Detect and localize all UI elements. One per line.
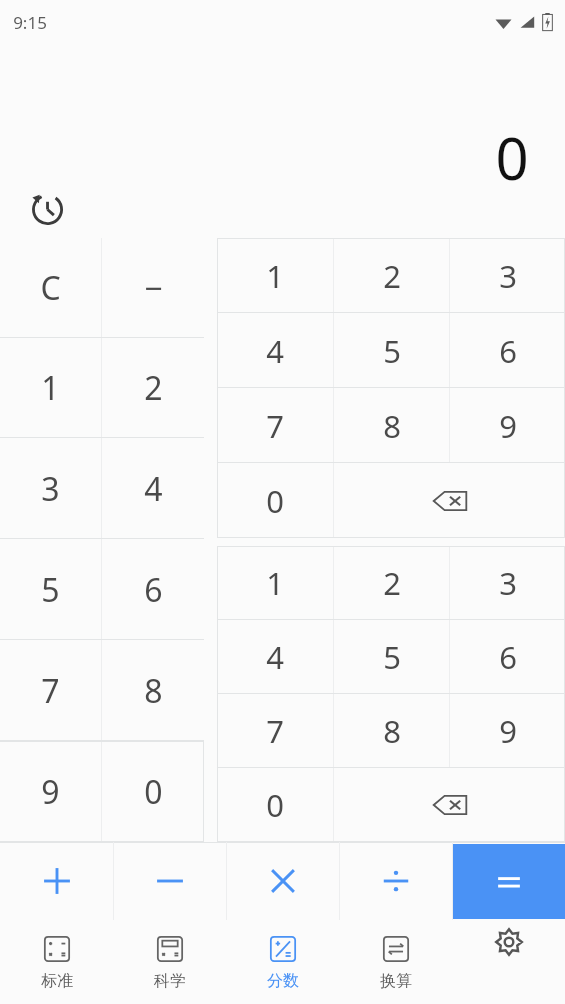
staticText: 7 [266, 710, 284, 752]
staticText: 9:15 [13, 11, 47, 34]
button[interactable]: 9 [450, 388, 565, 463]
button[interactable]: 8 [334, 388, 449, 463]
staticText: 分数 [267, 971, 299, 991]
button[interactable]: 3 [450, 546, 565, 620]
staticText: 1 [41, 366, 60, 410]
staticText: 6 [144, 568, 163, 612]
button[interactable]: 7 [217, 694, 333, 768]
staticText: 8 [383, 710, 401, 752]
staticText: 0 [144, 770, 163, 814]
button[interactable]: History [27, 189, 65, 227]
button[interactable]: Minus [114, 842, 226, 920]
button[interactable]: 7 [217, 388, 333, 463]
button[interactable]: Multiply [227, 842, 339, 920]
staticText: C [40, 266, 61, 310]
button[interactable]: 1 [0, 338, 101, 438]
button[interactable]: 8 [334, 694, 449, 768]
staticText: 5 [383, 636, 401, 678]
staticText: 3 [499, 255, 517, 297]
staticText: 8 [144, 669, 163, 713]
button[interactable]: 2 [102, 338, 204, 438]
button[interactable]: 换算 [339, 920, 452, 1004]
button[interactable]: 5 [334, 620, 449, 694]
staticText: 6 [499, 636, 517, 678]
button[interactable]: 0 [102, 741, 204, 842]
button[interactable]: 5 [334, 313, 449, 388]
button[interactable]: 分数 [226, 920, 339, 1004]
staticText: 0 [266, 480, 284, 522]
button[interactable]: 0 [217, 463, 333, 538]
button[interactable]: 9 [450, 694, 565, 768]
staticText: 4 [266, 636, 284, 678]
button[interactable]: Plus [0, 842, 113, 920]
staticText: 3 [41, 467, 60, 511]
button[interactable]: 6 [450, 620, 565, 694]
button[interactable]: 4 [217, 620, 333, 694]
staticText: 1 [266, 255, 284, 297]
button[interactable]: 3 [0, 438, 101, 539]
button[interactable]: 2 [334, 238, 449, 313]
staticText: 标准 [41, 971, 73, 991]
staticText: 2 [144, 366, 163, 410]
button[interactable]: Backspace [334, 463, 565, 538]
button[interactable]: − [102, 238, 204, 338]
button[interactable]: 科学 [113, 920, 226, 1004]
staticText: 科学 [154, 971, 186, 991]
button[interactable]: Divide [340, 842, 452, 920]
button[interactable]: Settings [452, 920, 565, 1004]
button[interactable]: 3 [450, 238, 565, 313]
staticText: 7 [41, 669, 60, 713]
button[interactable]: 标准 [0, 920, 113, 1004]
button[interactable]: 0 [217, 768, 333, 842]
button[interactable]: 6 [450, 313, 565, 388]
staticText: 3 [499, 562, 517, 604]
staticText: 1 [266, 562, 284, 604]
button[interactable]: 5 [0, 539, 101, 640]
button[interactable]: Equals [453, 844, 565, 919]
staticText: 5 [383, 330, 401, 372]
button[interactable]: Backspace [334, 768, 565, 842]
staticText: 4 [266, 330, 284, 372]
button[interactable]: 7 [0, 640, 101, 741]
staticText: 2 [383, 255, 401, 297]
staticText: 9 [41, 770, 60, 814]
staticText: 5 [41, 568, 60, 612]
staticText: 6 [499, 330, 517, 372]
button[interactable]: 8 [102, 640, 204, 741]
button[interactable]: 4 [102, 438, 204, 539]
staticText: 9 [499, 405, 517, 447]
staticText: 0 [266, 784, 284, 826]
button[interactable]: 2 [334, 546, 449, 620]
staticText: 9 [499, 710, 517, 752]
staticText: 8 [383, 405, 401, 447]
button[interactable]: 6 [102, 539, 204, 640]
button[interactable]: 1 [217, 238, 333, 313]
staticText: 0 [495, 118, 529, 197]
button[interactable]: 4 [217, 313, 333, 388]
staticText: − [144, 266, 163, 310]
staticText: 换算 [380, 971, 412, 991]
staticText: 4 [144, 467, 163, 511]
button[interactable]: 9 [0, 741, 101, 842]
button[interactable]: 1 [217, 546, 333, 620]
staticText: 7 [266, 405, 284, 447]
button[interactable]: C [0, 238, 101, 338]
staticText: 2 [383, 562, 401, 604]
